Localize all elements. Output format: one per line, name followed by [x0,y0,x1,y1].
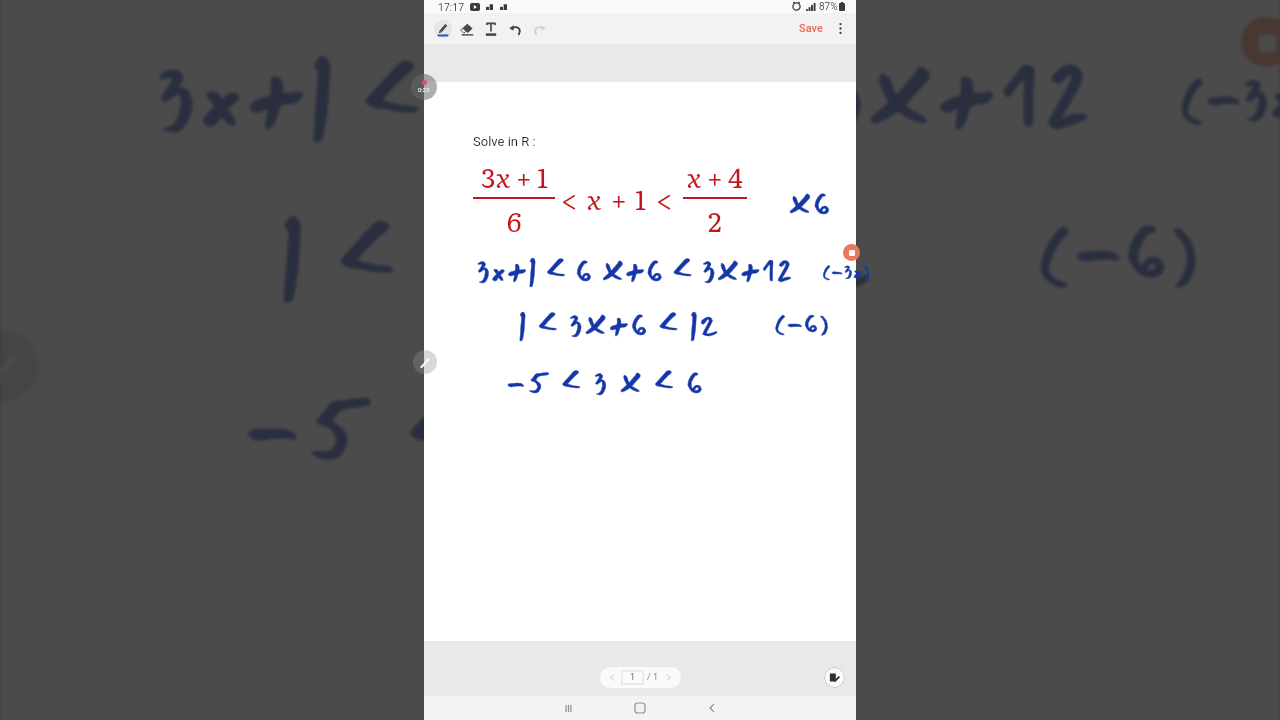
button[interactable]: Home [604,696,676,720]
staticText: 3x+| < 6 X+6 < 3X+12 [155,25,1096,170]
staticText: 2 [841,0,883,5]
button[interactable]: Recent apps [532,696,604,720]
staticText: (-6) [774,302,830,345]
staticText: 87% [819,1,838,13]
staticText: -5 < 3 X < 6 [243,357,835,502]
button[interactable]: Pen [431,17,455,41]
button[interactable]: Eraser [455,17,479,41]
button[interactable]: Pen tool [413,350,437,374]
button[interactable]: Redo [527,17,551,41]
button[interactable]: Stop recording [1241,17,1280,67]
staticText: (-3x) [1179,52,1280,147]
staticText: + [707,156,723,196]
button[interactable]: Save [796,19,826,38]
staticText: Solve in R : [473,134,536,149]
staticText: 17:17 [438,1,465,13]
staticText: < [561,176,579,221]
button[interactable]: Edit note [824,667,845,688]
staticText: 1 [537,156,548,196]
staticText: 1 [635,178,646,218]
button[interactable]: Text [479,17,503,41]
staticText: 3 [481,156,496,196]
button[interactable]: Undo [503,17,527,41]
staticText: X6 [788,178,833,228]
staticText: -5 < 3 X < 6 [243,357,835,502]
staticText: | < 3X+6 < |2 [518,301,721,350]
staticText: -5 < 3 X < 6 [506,359,706,408]
staticText: | < 3X+6 < |2 [279,185,880,330]
staticText: Save [799,22,823,35]
staticText: (-6) [774,302,830,345]
staticText: | < 3X+6 < |2 [518,301,721,350]
staticText: + [611,178,627,218]
staticText: (-6) [1037,188,1202,316]
staticText: x [587,178,602,218]
button[interactable]: More options [832,20,849,37]
staticText: 2 [708,200,722,240]
staticText: x [496,156,511,196]
staticText: 3x+| < 6 X+6 < 3X+12 [155,25,1096,170]
staticText: 6 [507,200,522,240]
staticText: 3x+| < 6 X+6 < 3X+12 [476,247,794,296]
staticText: / 1 [647,672,659,683]
button[interactable]: Back [676,696,748,720]
staticText: | < 3X+6 < |2 [279,185,880,330]
staticText: (-3x) [822,256,871,288]
staticText: 1 [630,672,636,683]
button[interactable]: Stop recording [843,244,860,261]
button[interactable]: 1 [600,667,681,688]
staticText: x [687,156,702,196]
staticText: (-6) [1037,188,1202,316]
staticText: (-3x) [822,256,871,288]
staticText: 4 [728,156,743,196]
staticText: X6 [788,178,833,228]
staticText: (-3x) [1179,52,1280,147]
staticText: + [516,156,532,196]
staticText: -5 < 3 X < 6 [506,359,706,408]
staticText: 0:23 [418,86,430,93]
staticText: < [656,176,674,221]
staticText: 3x+| < 6 X+6 < 3X+12 [476,247,794,296]
button[interactable]: Recording [411,74,437,100]
